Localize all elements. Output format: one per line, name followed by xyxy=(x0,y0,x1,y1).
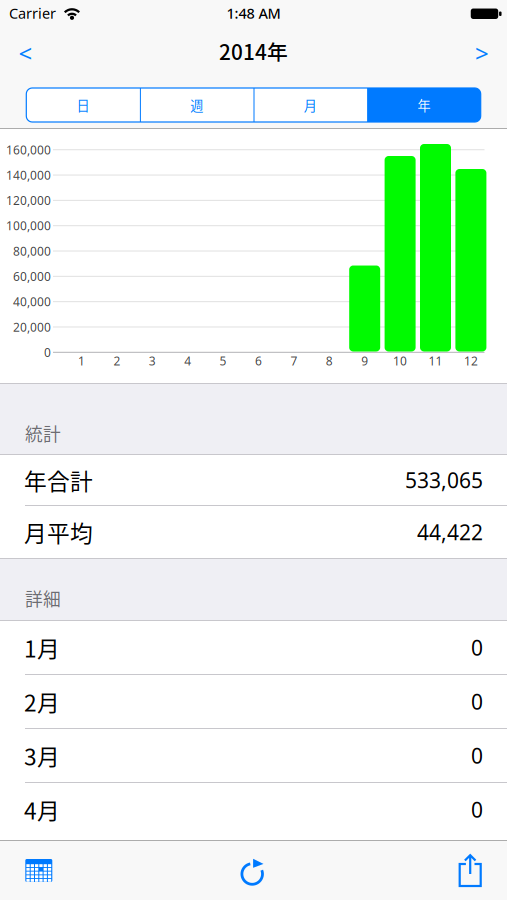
staticText: 60,000 xyxy=(13,268,51,284)
staticText: 44,422 xyxy=(417,518,483,546)
staticText: 4月 xyxy=(24,793,60,826)
staticText: 0 xyxy=(471,741,483,770)
button[interactable] xyxy=(223,844,283,900)
staticText: 6 xyxy=(255,353,262,369)
button[interactable]: < xyxy=(3,31,47,75)
staticText: 7 xyxy=(290,353,297,369)
button[interactable]: 日 xyxy=(26,88,140,122)
staticText: 月 xyxy=(304,95,317,114)
staticText: 3月 xyxy=(24,739,60,772)
staticText: 3 xyxy=(149,353,156,369)
staticText: 2月 xyxy=(24,685,60,718)
staticText: 120,000 xyxy=(6,192,51,208)
button[interactable] xyxy=(441,841,501,900)
button[interactable] xyxy=(9,841,69,900)
staticText: 8 xyxy=(326,353,333,369)
staticText: 統計 xyxy=(25,420,61,446)
staticText: 4 xyxy=(184,353,191,369)
button[interactable]: 週 xyxy=(140,88,253,122)
staticText: 20,000 xyxy=(13,319,51,335)
staticText: 日 xyxy=(77,95,90,114)
staticText: 週 xyxy=(190,95,203,114)
staticText: 140,000 xyxy=(6,167,51,183)
staticText: 0 xyxy=(471,687,483,716)
staticText: 9 xyxy=(361,353,368,369)
button[interactable]: 年 xyxy=(367,88,481,122)
staticText: 40,000 xyxy=(13,293,51,310)
button[interactable]: 月 xyxy=(253,88,367,122)
staticText: 533,065 xyxy=(405,466,483,494)
staticText: 年 xyxy=(417,95,430,114)
staticText: 1:48 AM xyxy=(226,3,280,23)
staticText: 1 xyxy=(78,353,85,369)
staticText: > xyxy=(475,37,489,69)
staticText: 月平均 xyxy=(24,516,93,548)
staticText: 0 xyxy=(471,633,483,662)
staticText: 160,000 xyxy=(6,142,51,158)
staticText: 10 xyxy=(393,353,407,369)
staticText: 1月 xyxy=(24,631,60,664)
staticText: 年合計 xyxy=(24,464,93,496)
staticText: 5 xyxy=(220,353,227,369)
button[interactable]: > xyxy=(460,31,504,75)
staticText: < xyxy=(18,37,32,69)
staticText: 0 xyxy=(44,344,51,360)
staticText: 0 xyxy=(471,795,483,824)
staticText: 12 xyxy=(464,353,478,369)
staticText: 詳細 xyxy=(25,585,61,611)
staticText: 80,000 xyxy=(13,243,51,259)
staticText: 2014年 xyxy=(219,36,288,66)
staticText: Carrier xyxy=(9,3,56,23)
staticText: 11 xyxy=(428,353,442,369)
staticText: 2 xyxy=(113,353,120,369)
staticText: 100,000 xyxy=(6,217,51,234)
